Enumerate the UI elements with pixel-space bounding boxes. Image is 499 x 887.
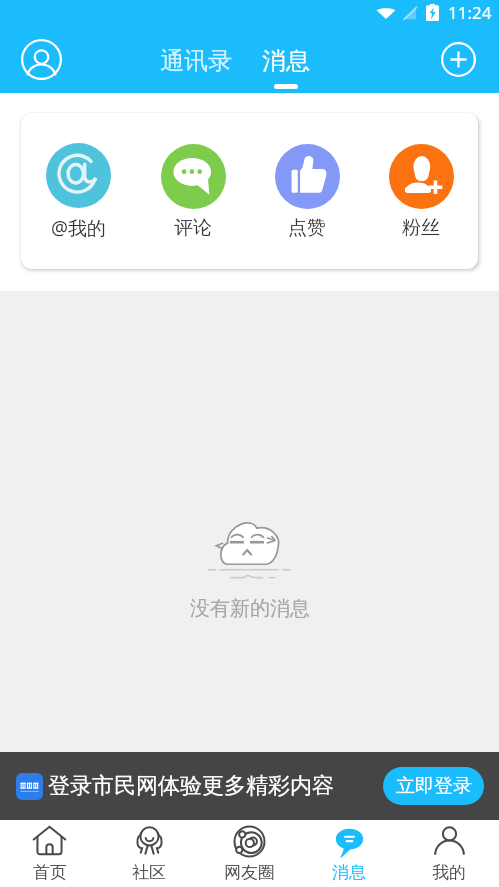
button[interactable]: 立即登录 — [383, 767, 484, 805]
staticText: 首页 — [33, 862, 67, 883]
staticText: 11:24 — [448, 1, 492, 24]
button[interactable]: 点赞 — [250, 113, 364, 269]
button[interactable]: 网友圈 — [199, 820, 299, 887]
staticText: 消息 — [332, 862, 366, 883]
staticText: 没有新的消息 — [190, 596, 310, 621]
staticText: 网友圈 — [224, 862, 275, 883]
staticText: 点赞 — [288, 216, 326, 240]
staticText: @我的 — [51, 215, 107, 241]
staticText: 登录市民网体验更多精彩内容 — [48, 772, 334, 800]
button[interactable]: 我的 — [399, 820, 499, 887]
button[interactable]: 首页 — [0, 820, 99, 887]
button[interactable]: 评论 — [136, 113, 250, 269]
button[interactable]: @我的 — [21, 113, 136, 269]
staticText: 我的 — [432, 862, 466, 883]
button[interactable]: 消息 — [254, 42, 318, 93]
button[interactable]: 消息 — [299, 820, 399, 887]
staticText: 评论 — [174, 216, 212, 240]
staticText: 立即登录 — [396, 774, 472, 798]
staticText: 消息 — [262, 46, 310, 76]
button[interactable]: 社区 — [99, 820, 199, 887]
button[interactable]: 通讯录 — [152, 42, 240, 80]
staticText: 粉丝 — [402, 216, 440, 240]
button[interactable]: Add — [434, 35, 482, 83]
staticText: 社区 — [132, 862, 166, 883]
staticText: 通讯录 — [160, 46, 232, 76]
button[interactable]: 粉丝 — [364, 113, 478, 269]
button[interactable]: Profile — [13, 31, 69, 87]
